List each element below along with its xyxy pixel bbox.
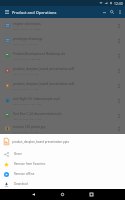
button[interactable]: More options [113, 110, 124, 121]
staticText: Remove from Favorites [14, 162, 46, 166]
button[interactable]: Back [29, 190, 38, 199]
button[interactable]: More options [113, 95, 124, 106]
staticText: ProductDevelopment Roadmap.xls [13, 52, 65, 56]
button[interactable]: More options [113, 65, 124, 76]
staticText: Mar 14, 2014 · 7.1 MB [13, 87, 39, 90]
staticText: Mar 14, 2014 · 1.1 MB [13, 130, 39, 133]
button[interactable]: More options [113, 35, 124, 46]
button[interactable]: Remove from Favorites [0, 159, 125, 169]
button[interactable]: product_devplan_board presentation.pdf [0, 78, 125, 93]
button[interactable]: Search [108, 8, 116, 16]
staticText: Share [14, 152, 22, 156]
staticText: 12:30 [114, 1, 123, 6]
button[interactable]: Recent apps [87, 190, 96, 199]
staticText: Mar 28, 2014 · 150.8 KB [13, 57, 41, 60]
button[interactable]: Remove offline [0, 169, 125, 179]
staticText: test flight 56' videosample.mp4 [13, 97, 60, 101]
button[interactable]: Download [0, 179, 125, 189]
staticText: Download [14, 182, 28, 186]
button[interactable]: Test Run 1 24 documentation.xls [0, 108, 125, 123]
staticText: testrun 120 photo.jpg [13, 125, 46, 129]
button[interactable]: More options [113, 80, 124, 91]
staticText: Mar 14, 2014 · 48 | 8 KB [13, 117, 42, 120]
staticText: Mar 14, 2014 · 7.1 MB [13, 72, 39, 75]
staticText: prototype drawings [13, 37, 43, 41]
button[interactable]: test flight 56' videosample.mp4 [0, 93, 125, 108]
staticText: Remove offline [14, 172, 35, 176]
button[interactable]: ProductDevelopment Roadmap.xls [0, 48, 125, 63]
staticText: engine schematics [13, 22, 41, 26]
button[interactable]: More options [116, 8, 124, 16]
button[interactable]: product_devplan_board presentation.pdf [0, 63, 125, 78]
button[interactable]: engine schematics [0, 18, 125, 33]
button[interactable]: More options [113, 20, 124, 31]
button[interactable]: More options [113, 50, 124, 61]
staticText: Test Run 1 24 documentation.xls [13, 112, 62, 116]
staticText: product_devplan_board presentation.pptx [12, 140, 70, 144]
staticText: Product and Operations [12, 10, 57, 15]
staticText: product_devplan_board presentation.pdf [13, 67, 75, 71]
button[interactable]: prototype drawings [0, 33, 125, 48]
staticText: product_devplan_board presentation.pdf [13, 82, 75, 86]
button[interactable]: Share [0, 149, 125, 159]
staticText: May 7, 2014 · 48 | 8 KB [13, 27, 40, 30]
button[interactable]: Home [58, 190, 67, 199]
button[interactable]: testrun 120 photo.jpg [0, 123, 125, 134]
button[interactable]: Navigation menu [3, 8, 11, 16]
button[interactable]: Select all [100, 8, 108, 16]
staticText: Mar 14, 2014 · 175.7 MB [13, 102, 42, 105]
button[interactable]: More options [113, 123, 124, 134]
staticText: May 7, 2014 · 2.3 MB [13, 42, 38, 45]
